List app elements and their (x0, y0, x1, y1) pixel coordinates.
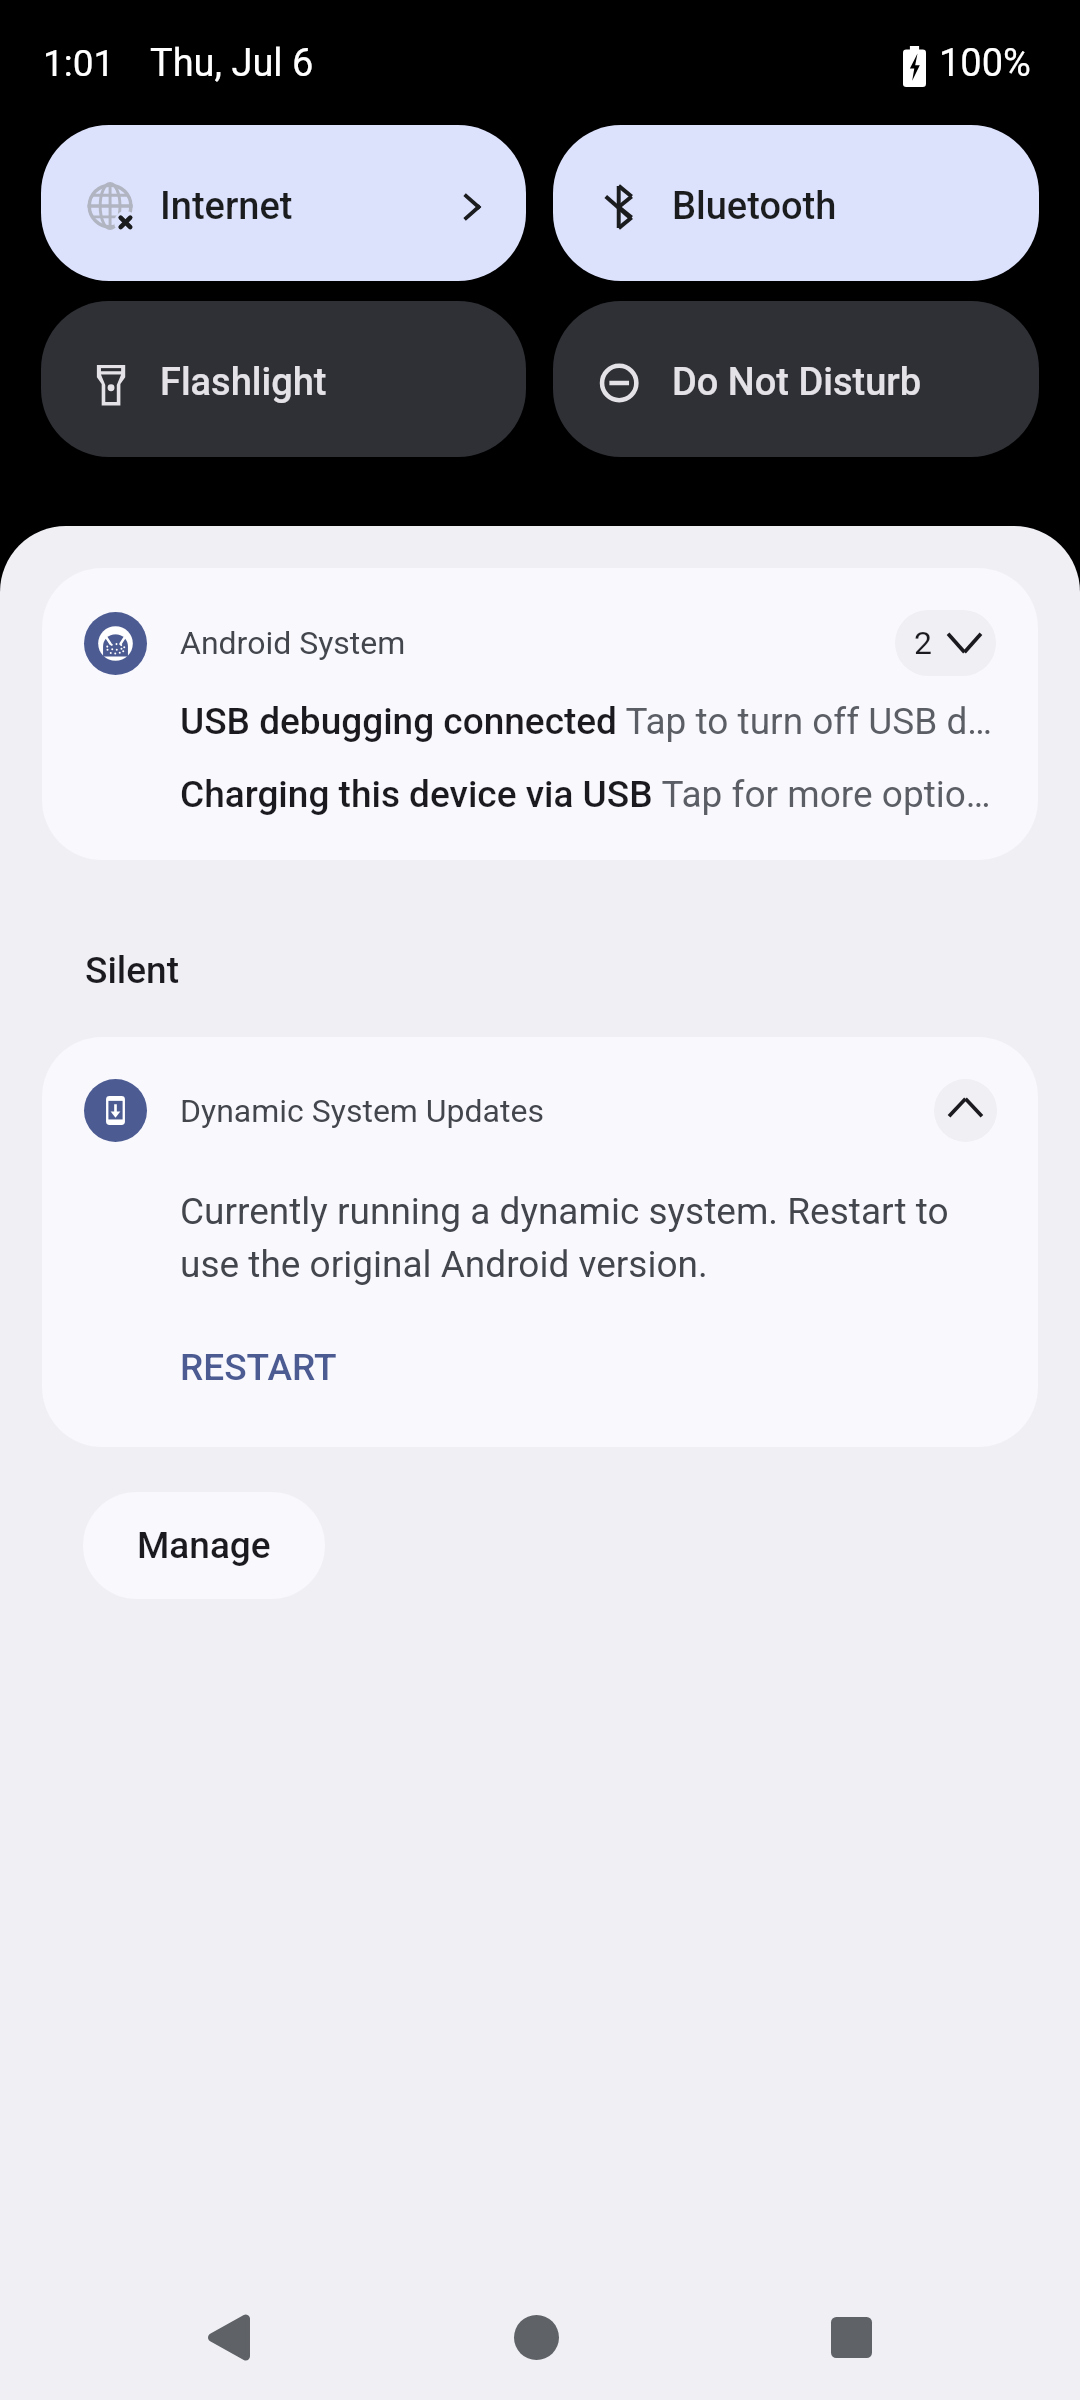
button[interactable]: Recent apps (791, 2274, 911, 2400)
button[interactable]: Do Not Disturb (553, 301, 1039, 457)
button[interactable]: Back (169, 2274, 289, 2400)
staticText: RESTART (180, 1346, 337, 1389)
staticText: Currently running a dynamic system. Rest… (180, 1190, 952, 1286)
button[interactable]: Bluetooth (553, 125, 1039, 281)
staticText: 100% (939, 41, 1031, 86)
button[interactable]: Expand notification group (895, 610, 996, 676)
staticText: Manage (137, 1524, 271, 1567)
button[interactable]: Collapse notification (934, 1079, 997, 1142)
button[interactable]: Dynamic System Updates (42, 1037, 1038, 1447)
staticText: USB debugging connected (180, 700, 617, 743)
staticText: Internet (160, 184, 293, 229)
staticText: Silent (85, 949, 179, 992)
button[interactable]: RESTART (174, 1340, 343, 1395)
staticText: Flashlight (160, 360, 327, 405)
staticText: Tap for more optio… (653, 773, 991, 816)
button[interactable]: Manage (83, 1492, 325, 1599)
staticText: Tap to turn off USB d… (617, 700, 993, 743)
staticText: Android System (180, 624, 406, 662)
staticText: Dynamic System Updates (180, 1092, 544, 1130)
staticText: Do Not Disturb (672, 360, 922, 405)
staticText: 2 (914, 624, 932, 662)
button[interactable]: Home (476, 2274, 596, 2400)
staticText: Charging this device via USB (180, 773, 653, 816)
button[interactable]: Flashlight (41, 301, 526, 457)
staticText: 1:01 (43, 42, 115, 85)
button[interactable]: Internet (41, 125, 526, 281)
staticText: Bluetooth (672, 184, 837, 229)
staticText: Thu, Jul 6 (150, 41, 314, 86)
button[interactable]: Android System (42, 568, 1038, 860)
